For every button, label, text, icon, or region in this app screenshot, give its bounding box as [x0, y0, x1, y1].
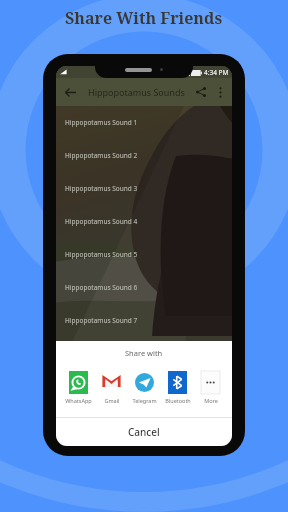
staticText: Hippopotamus Sound 4 — [65, 217, 138, 226]
staticText: Share With Friends — [65, 7, 223, 29]
button[interactable]: Bluetooth — [161, 371, 194, 404]
staticText: Hippopotamus Sound 3 — [65, 184, 138, 193]
button[interactable]: Hippopotamus Sound 4 — [56, 205, 232, 238]
staticText: Hippopotamus Sound 6 — [65, 283, 138, 292]
staticText: WhatsApp — [65, 397, 92, 404]
staticText: Bluetooth — [165, 397, 191, 404]
button[interactable]: Back — [61, 83, 79, 101]
staticText: Hippopotamus Sound 5 — [65, 250, 138, 259]
staticText: Hippopotamus Sounds — [88, 86, 185, 98]
button[interactable]: Hippopotamus Sound 5 — [56, 238, 232, 271]
button[interactable]: Hippopotamus Sound 7 — [56, 304, 232, 337]
button[interactable]: Hippopotamus Sound 1 — [56, 106, 232, 139]
button[interactable]: WhatsApp — [62, 371, 95, 404]
staticText: Share with — [125, 348, 163, 358]
button[interactable]: Cancel — [56, 417, 232, 446]
button[interactable]: Hippopotamus Sound 2 — [56, 139, 232, 172]
button[interactable]: Hippopotamus Sound 3 — [56, 172, 232, 205]
staticText: Gmail — [104, 397, 120, 404]
button[interactable]: Gmail — [95, 371, 128, 404]
staticText: Hippopotamus Sound 7 — [65, 316, 138, 325]
button[interactable]: More — [194, 371, 227, 404]
button[interactable]: Hippopotamus Sound 8 — [56, 337, 232, 370]
staticText: Hippopotamus Sound 2 — [65, 151, 138, 160]
staticText: Hippopotamus Sound 8 — [65, 349, 138, 358]
button[interactable]: Share — [191, 82, 211, 102]
staticText: Cancel — [128, 425, 160, 439]
staticText: Telegram — [132, 397, 157, 404]
staticText: 4:34 PM — [204, 68, 229, 77]
button[interactable]: More options — [211, 83, 229, 101]
staticText: Hippopotamus Sound 1 — [65, 118, 138, 127]
staticText: More — [204, 397, 218, 404]
button[interactable]: Hippopotamus Sound 6 — [56, 271, 232, 304]
button[interactable]: Telegram — [128, 371, 161, 404]
